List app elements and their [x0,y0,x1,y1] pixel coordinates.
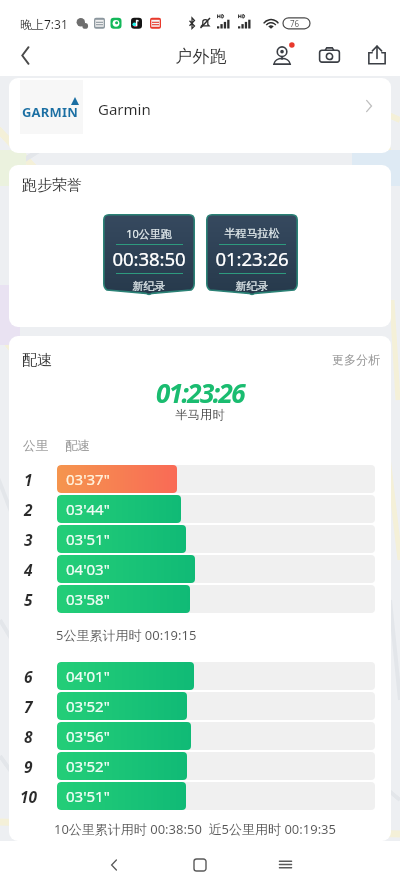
staticText: 03'58" [66,589,110,609]
staticText: 2 [24,499,33,520]
staticText: 10 [20,786,38,807]
staticText: 03'44" [66,499,110,519]
staticText: 03'37" [66,469,110,489]
button[interactable]: Recent apps [255,841,315,888]
staticText: 新纪录 [103,279,195,293]
button[interactable]: Share [353,34,400,76]
staticText: 04'01" [66,666,110,686]
staticText: 04'03" [66,559,110,579]
staticText: 1 [24,469,33,490]
staticText: 10公里累计用时 00:38:50 近5公里用时 00:19:35 [54,820,336,838]
button[interactable]: Route map [259,34,306,76]
staticText: 10公里跑 [103,226,195,241]
staticText: 4 [24,559,33,580]
staticText: 03'51" [66,786,110,806]
button[interactable]: Back [84,841,144,888]
staticText: 00:38:50 [103,246,195,271]
button[interactable]: Camera [306,34,353,76]
staticText: 3 [24,529,33,550]
staticText: 配速 [65,438,90,454]
staticText: 03'51" [66,529,110,549]
staticText: 6 [24,666,33,687]
staticText: 晚上7:31 [20,16,68,32]
staticText: 跑步荣誉 [22,176,82,195]
button[interactable]: GARMIN [9,78,391,153]
staticText: 5公里累计用时 00:19:15 [56,626,197,644]
staticText: 9 [24,756,33,777]
staticText: GARMIN [22,103,79,121]
button[interactable]: Home [170,841,230,888]
staticText: 5 [24,589,33,610]
staticText: 更多分析 [332,352,380,367]
staticText: 半马用时 [9,407,391,423]
button[interactable]: Back [0,34,50,76]
staticText: 76 [290,18,300,29]
staticText: 01:23:26 [9,375,391,410]
staticText: 新纪录 [206,279,298,293]
staticText: 半程马拉松 [206,226,298,240]
staticText: 户外跑 [1,46,400,67]
staticText: 03'52" [66,696,110,716]
staticText: 03'52" [66,756,110,776]
staticText: 7 [24,696,33,717]
staticText: 01:23:26 [206,246,298,271]
staticText: Garmin [98,99,151,119]
button[interactable]: 更多分析 [332,353,380,368]
staticText: 公里 [23,438,48,454]
staticText: 8 [24,726,33,747]
staticText: 配速 [22,351,52,370]
staticText: 03'56" [66,726,110,746]
